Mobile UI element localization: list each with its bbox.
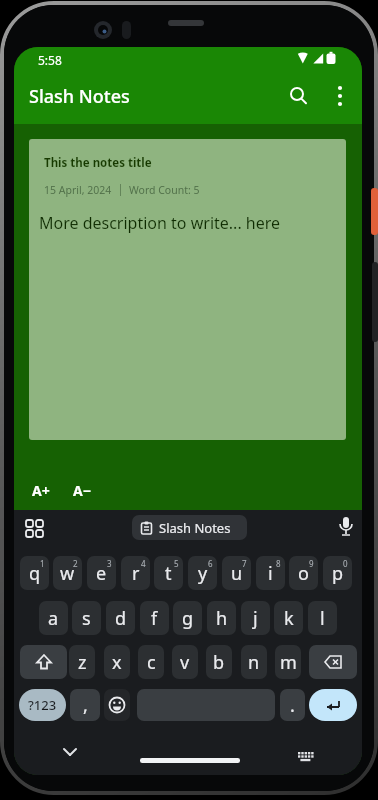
staticText: u: [231, 561, 243, 586]
button[interactable]: [188, 556, 217, 590]
staticText: x: [112, 650, 122, 675]
staticText: d: [115, 606, 127, 631]
button[interactable]: Slash Notes: [132, 515, 247, 540]
button[interactable]: a: [39, 601, 68, 635]
button[interactable]: A−: [73, 481, 91, 500]
button[interactable]: [332, 84, 348, 108]
staticText: More description to write... here: [39, 212, 281, 234]
button[interactable]: n: [241, 645, 267, 679]
staticText: Slash Notes: [159, 519, 231, 537]
button[interactable]: ,: [70, 689, 100, 721]
staticText: 5: [174, 558, 179, 569]
button[interactable]: k: [274, 601, 303, 635]
button[interactable]: [289, 556, 318, 590]
staticText: z: [78, 650, 87, 675]
button[interactable]: [256, 556, 285, 590]
button[interactable]: [309, 645, 357, 679]
button[interactable]: z: [69, 645, 95, 679]
staticText: r: [132, 561, 140, 586]
button[interactable]: [62, 746, 78, 758]
staticText: 2: [73, 558, 78, 569]
button[interactable]: [87, 556, 116, 590]
button[interactable]: [20, 645, 67, 679]
button[interactable]: [297, 751, 314, 763]
staticText: 5:58: [38, 52, 62, 68]
button[interactable]: c: [138, 645, 164, 679]
staticText: .: [290, 693, 295, 718]
staticText: y: [198, 561, 208, 586]
button[interactable]: j: [241, 601, 270, 635]
staticText: j: [253, 606, 258, 631]
button[interactable]: [121, 556, 150, 590]
button[interactable]: [323, 556, 352, 590]
staticText: 8: [276, 558, 281, 569]
staticText: 15 April, 2024: [44, 183, 112, 197]
button[interactable]: [286, 84, 310, 108]
button[interactable]: s: [72, 601, 101, 635]
staticText: ,: [83, 693, 88, 718]
button[interactable]: m: [275, 645, 301, 679]
staticText: k: [284, 606, 294, 631]
button[interactable]: ?123: [19, 689, 66, 721]
button[interactable]: h: [207, 601, 236, 635]
staticText: s: [82, 606, 91, 631]
staticText: h: [216, 606, 228, 631]
button[interactable]: .: [280, 689, 305, 721]
button[interactable]: [154, 556, 183, 590]
staticText: w: [60, 561, 75, 586]
staticText: Word Count: 5: [129, 183, 200, 197]
staticText: 1: [40, 558, 45, 569]
staticText: 3: [107, 558, 112, 569]
button[interactable]: x: [104, 645, 130, 679]
staticText: 9: [309, 558, 314, 569]
button[interactable]: d: [106, 601, 135, 635]
button[interactable]: g: [173, 601, 202, 635]
staticText: a: [48, 606, 59, 631]
staticText: o: [298, 561, 309, 586]
button[interactable]: This the notes title: [29, 139, 346, 440]
staticText: t: [165, 561, 172, 586]
staticText: i: [268, 561, 273, 586]
staticText: c: [147, 650, 156, 675]
button[interactable]: f: [140, 601, 169, 635]
button[interactable]: [20, 556, 49, 590]
button[interactable]: [104, 689, 130, 721]
button[interactable]: [137, 689, 275, 721]
button[interactable]: A+: [32, 481, 50, 500]
button[interactable]: v: [172, 645, 198, 679]
staticText: l: [320, 606, 325, 631]
staticText: 7: [242, 558, 247, 569]
staticText: This the notes title: [44, 155, 152, 171]
staticText: 0: [343, 558, 348, 569]
button[interactable]: [309, 689, 357, 721]
staticText: Slash Notes: [29, 84, 130, 109]
staticText: b: [213, 650, 225, 675]
staticText: e: [96, 561, 107, 586]
staticText: ?123: [28, 696, 57, 714]
staticText: v: [180, 650, 190, 675]
button[interactable]: b: [206, 645, 232, 679]
staticText: 6: [208, 558, 213, 569]
staticText: g: [182, 606, 194, 631]
staticText: f: [151, 606, 158, 631]
staticText: m: [280, 650, 297, 675]
button[interactable]: l: [308, 601, 337, 635]
button[interactable]: [140, 758, 240, 763]
button[interactable]: [53, 556, 82, 590]
staticText: p: [332, 561, 344, 586]
button[interactable]: [18, 517, 54, 543]
staticText: n: [248, 650, 260, 675]
button[interactable]: [222, 556, 251, 590]
staticText: 4: [141, 558, 146, 569]
button[interactable]: [333, 514, 359, 540]
staticText: q: [29, 561, 41, 586]
